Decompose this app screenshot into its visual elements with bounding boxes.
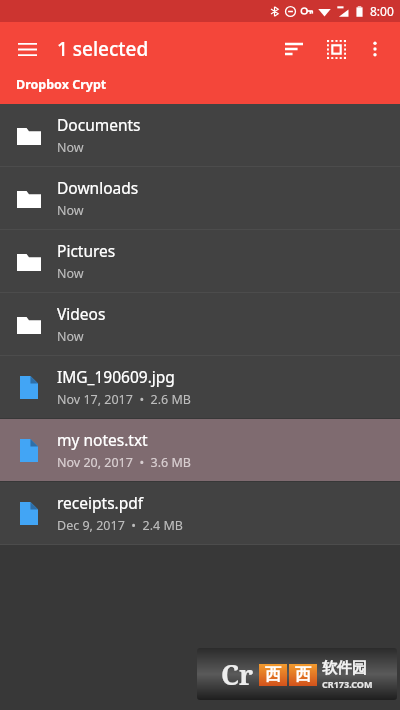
staticText: receipts.pdf — [57, 492, 144, 513]
button[interactable]: Videos — [0, 293, 400, 355]
staticText: Documents — [57, 114, 141, 135]
button[interactable]: receipts.pdf — [0, 482, 400, 544]
staticText: my notes.txt — [57, 429, 148, 450]
button[interactable]: Pictures — [0, 230, 400, 292]
button[interactable]: Documents — [0, 104, 400, 166]
staticText: Now — [57, 139, 84, 156]
button[interactable]: Menu — [6, 28, 48, 70]
staticText: Pictures — [57, 240, 116, 261]
staticText: Dropbox Crypt — [16, 76, 107, 93]
staticText: IMG_190609.jpg — [57, 366, 175, 387]
staticText: 西 — [265, 665, 281, 685]
staticText: Nov 20, 2017 • 3.6 MB — [57, 454, 191, 471]
button[interactable]: my notes.txt — [0, 419, 400, 481]
staticText: CR173.COM — [322, 678, 373, 690]
button[interactable]: Sort — [274, 29, 314, 69]
staticText: 1 selected — [57, 36, 149, 62]
staticText: Downloads — [57, 177, 139, 198]
staticText: Videos — [57, 303, 106, 324]
button[interactable]: IMG_190609.jpg — [0, 356, 400, 418]
staticText: 软件园 — [322, 659, 367, 678]
staticText: Nov 17, 2017 • 2.6 MB — [57, 391, 191, 408]
button[interactable]: Downloads — [0, 167, 400, 229]
staticText: 8:00 — [370, 3, 394, 19]
staticText: Dec 9, 2017 • 2.4 MB — [57, 517, 183, 534]
staticText: Now — [57, 265, 84, 282]
staticText: Now — [57, 202, 84, 219]
staticText: Cr — [221, 656, 254, 693]
button[interactable]: More options — [356, 30, 394, 68]
staticText: Now — [57, 328, 84, 345]
button[interactable]: Select all — [316, 29, 356, 69]
staticText: 西 — [295, 665, 311, 685]
